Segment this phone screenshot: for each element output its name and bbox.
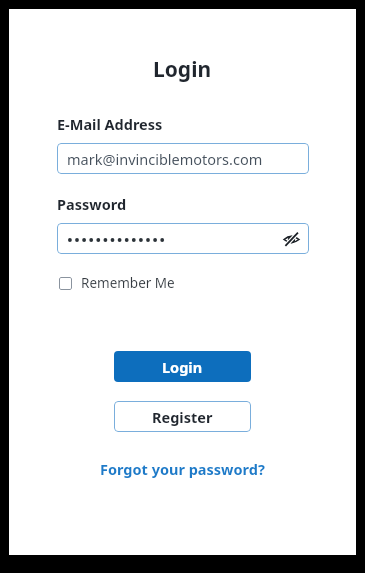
button[interactable]: Login — [114, 351, 251, 382]
staticText: Password — [57, 194, 127, 214]
staticText: E-Mail Address — [57, 114, 163, 134]
button[interactable]: mark@invinciblemotors.com — [57, 143, 309, 174]
button[interactable]: Forgot your password? — [94, 456, 271, 482]
staticText: Login — [162, 357, 203, 377]
button[interactable]: Remember Me — [57, 271, 177, 295]
button[interactable]: Show password — [280, 228, 302, 250]
button[interactable]: Register — [114, 401, 251, 432]
staticText: Login — [153, 55, 212, 84]
staticText: Register — [152, 407, 213, 427]
staticText: Remember Me — [81, 274, 175, 292]
button[interactable]: Show password — [57, 223, 309, 254]
staticText: mark@invinciblemotors.com — [67, 149, 263, 169]
staticText: Forgot your password? — [100, 459, 265, 479]
